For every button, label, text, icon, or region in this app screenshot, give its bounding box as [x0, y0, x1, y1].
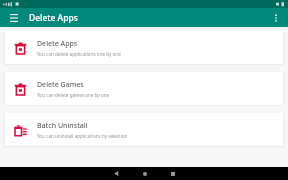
- staticText: Batch Uninstall: [37, 121, 88, 131]
- button[interactable]: Delete Games: [4, 72, 284, 106]
- button[interactable]: Open navigation drawer: [6, 10, 22, 26]
- button[interactable]: Delete Apps: [4, 31, 284, 65]
- staticText: Delete Apps: [37, 39, 78, 49]
- staticText: You can delete applications one by one: [37, 51, 121, 57]
- staticText: You can uninstall applications by select…: [37, 133, 128, 139]
- button[interactable]: More options: [267, 9, 285, 27]
- staticText: Delete Games: [37, 80, 84, 90]
- staticText: Delete Apps: [29, 12, 78, 24]
- staticText: You can delete games one by one: [37, 92, 110, 98]
- button[interactable]: Back: [107, 167, 126, 180]
- button[interactable]: Batch Uninstall: [4, 113, 284, 147]
- button[interactable]: Recent apps: [163, 167, 182, 180]
- button[interactable]: Home: [135, 167, 154, 180]
